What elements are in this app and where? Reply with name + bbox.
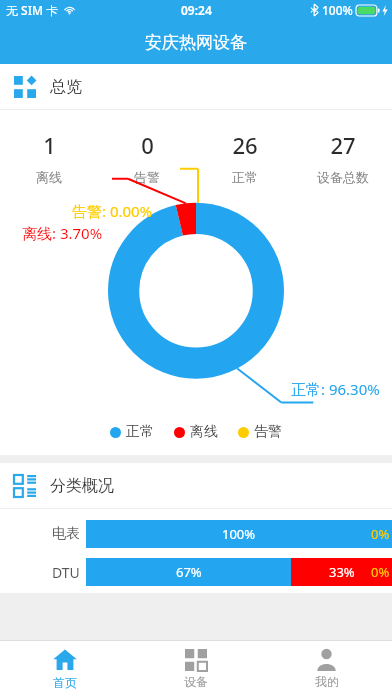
staticText: 67%	[176, 563, 202, 581]
staticText: 电表	[52, 525, 80, 543]
staticText: 总览	[50, 77, 82, 97]
staticText: 告警	[254, 423, 282, 441]
staticText: 09:24	[181, 2, 212, 18]
button[interactable]: 1	[0, 130, 98, 185]
button[interactable]: 27	[294, 130, 392, 185]
button[interactable]: 我的	[261, 641, 392, 696]
staticText: 正常	[232, 169, 258, 185]
staticText: DTU	[52, 563, 80, 582]
staticText: 正常: 96.30%	[291, 379, 380, 399]
staticText: 设备	[184, 674, 208, 689]
staticText: 安庆热网设备	[145, 32, 247, 53]
staticText: 26	[232, 130, 258, 160]
staticText: 27	[330, 130, 356, 160]
staticText: 0	[141, 130, 154, 160]
staticText: 无 SIM 卡	[6, 2, 59, 18]
staticText: 正常	[126, 423, 154, 441]
button[interactable]: 26	[196, 130, 294, 185]
staticText: 分类概况	[50, 476, 114, 496]
staticText: 100%	[222, 525, 256, 543]
staticText: 设备总数	[317, 169, 369, 185]
staticText: 告警	[134, 169, 160, 185]
staticText: 离线	[190, 423, 218, 441]
staticText: 0%	[371, 563, 390, 581]
staticText: 100%	[322, 2, 353, 18]
button[interactable]: 0	[98, 130, 196, 185]
staticText: 我的	[315, 674, 339, 689]
staticText: 离线: 3.70%	[22, 223, 103, 243]
button[interactable]: 首页	[0, 641, 130, 696]
staticText: 首页	[53, 675, 77, 690]
staticText: 告警: 0.00%	[72, 201, 153, 221]
staticText: 离线	[36, 169, 62, 185]
staticText: 0%	[371, 525, 390, 543]
staticText: 33%	[329, 563, 355, 581]
staticText: 1	[43, 130, 56, 160]
button[interactable]: 设备	[130, 641, 261, 696]
